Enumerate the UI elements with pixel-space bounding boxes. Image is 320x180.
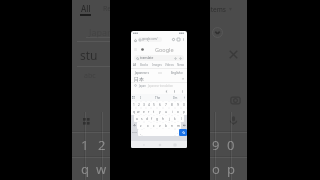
- button[interactable]: Recent apps: [172, 142, 177, 147]
- button[interactable]: r: [146, 108, 151, 115]
- button[interactable]: q: [131, 108, 136, 115]
- button[interactable]: .: [175, 129, 179, 136]
- button[interactable]: n: [169, 122, 175, 129]
- button[interactable]: 1: [131, 101, 136, 108]
- button[interactable]: 2: [93, 135, 110, 155]
- button[interactable]: [181, 122, 187, 129]
- staticText: p: [183, 110, 185, 114]
- staticText: 2: [98, 136, 106, 154]
- staticText: I: [140, 96, 142, 100]
- button[interactable]: 0: [181, 101, 187, 108]
- button[interactable]: p: [181, 108, 187, 115]
- button[interactable]: 2: [136, 101, 141, 108]
- staticText: q: [133, 110, 135, 114]
- button[interactable]: 5: [151, 101, 157, 108]
- button[interactable]: Videos: [165, 63, 174, 67]
- button[interactable]: Google Lens: [226, 91, 244, 109]
- staticText: Japan: [139, 84, 146, 88]
- button[interactable]: translate: [134, 55, 184, 61]
- button[interactable]: 9: [207, 135, 224, 155]
- button[interactable]: q: [76, 159, 93, 179]
- button[interactable]: Images: [152, 63, 162, 67]
- button[interactable]: s: [139, 115, 144, 122]
- button[interactable]: o: [175, 108, 181, 115]
- button[interactable]: All: [81, 3, 91, 14]
- button[interactable]: d: [144, 115, 149, 122]
- button[interactable]: 7: [163, 101, 169, 108]
- button[interactable]: Close: [226, 47, 240, 61]
- staticText: 4: [148, 103, 150, 107]
- button[interactable]: ?123: [131, 129, 138, 136]
- button[interactable]: x: [144, 122, 151, 129]
- button[interactable]: All: [133, 63, 137, 67]
- button[interactable]: w: [93, 159, 110, 179]
- button[interactable]: k: [172, 115, 178, 122]
- button[interactable]: c: [151, 122, 157, 129]
- button[interactable]: w: [136, 108, 141, 115]
- button[interactable]: 8: [169, 101, 175, 108]
- staticText: d: [146, 117, 148, 121]
- staticText: English ▾: [171, 71, 183, 75]
- staticText: 日本: [134, 76, 144, 82]
- staticText: 3: [143, 103, 145, 107]
- staticText: t: [153, 110, 155, 114]
- button[interactable]: z: [137, 122, 144, 129]
- button[interactable]: ,: [138, 129, 142, 136]
- button[interactable]: i: [169, 108, 175, 115]
- button[interactable]: [131, 122, 137, 129]
- staticText: Recent: [103, 4, 126, 14]
- button[interactable]: g: [154, 115, 160, 122]
- staticText: s: [141, 117, 143, 121]
- button[interactable]: [211, 26, 224, 39]
- staticText: News: [177, 63, 185, 67]
- button[interactable]: m: [175, 122, 181, 129]
- button[interactable]: o: [207, 159, 224, 179]
- button[interactable]: Home: [157, 142, 162, 147]
- button[interactable]: 4: [146, 101, 151, 108]
- button[interactable]: Search: [179, 129, 187, 136]
- staticText: y: [159, 110, 161, 114]
- staticText: e: [143, 110, 145, 114]
- staticText: 9: [177, 103, 179, 107]
- staticText: h: [162, 117, 164, 121]
- button[interactable]: 6: [157, 101, 163, 108]
- staticText: r: [148, 110, 150, 114]
- button[interactable]: 9: [175, 101, 181, 108]
- button[interactable]: 3: [141, 101, 146, 108]
- staticText: Japanese translation: [148, 84, 173, 88]
- button[interactable]: f: [149, 115, 154, 122]
- staticText: n: [171, 124, 173, 128]
- staticText: Japan: [89, 26, 113, 38]
- staticText: v: [159, 124, 161, 128]
- button[interactable]: p: [222, 159, 239, 179]
- button[interactable]: v: [157, 122, 163, 129]
- button[interactable]: Voice search: [224, 111, 242, 129]
- button[interactable]: l: [178, 115, 184, 122]
- button[interactable]: e: [141, 108, 146, 115]
- button[interactable]: 0: [222, 135, 239, 155]
- button[interactable]: t: [151, 108, 157, 115]
- button[interactable]: News: [177, 63, 185, 67]
- button[interactable]: 1: [76, 135, 93, 155]
- staticText: 5: [153, 103, 155, 107]
- staticText: 0: [227, 136, 235, 154]
- staticText: i: [172, 110, 173, 114]
- button[interactable]: google.com/search: [138, 37, 162, 42]
- button[interactable]: h: [160, 115, 166, 122]
- button[interactable]: u: [163, 108, 169, 115]
- button[interactable]: ▪▪▪: [131, 31, 187, 148]
- button[interactable]: y: [157, 108, 163, 115]
- button[interactable]: Books: [140, 63, 149, 67]
- staticText: 0: [183, 103, 185, 107]
- staticText: o: [177, 110, 179, 114]
- staticText: 1: [81, 136, 89, 154]
- button[interactable]: b: [163, 122, 169, 129]
- button[interactable]: j: [166, 115, 172, 122]
- button[interactable]: Back: [141, 142, 146, 147]
- staticText: 8: [171, 103, 173, 107]
- button[interactable]: a: [134, 115, 139, 122]
- button[interactable]: ×: [181, 76, 186, 81]
- button[interactable]: [133, 38, 137, 42]
- staticText: j: [169, 117, 170, 121]
